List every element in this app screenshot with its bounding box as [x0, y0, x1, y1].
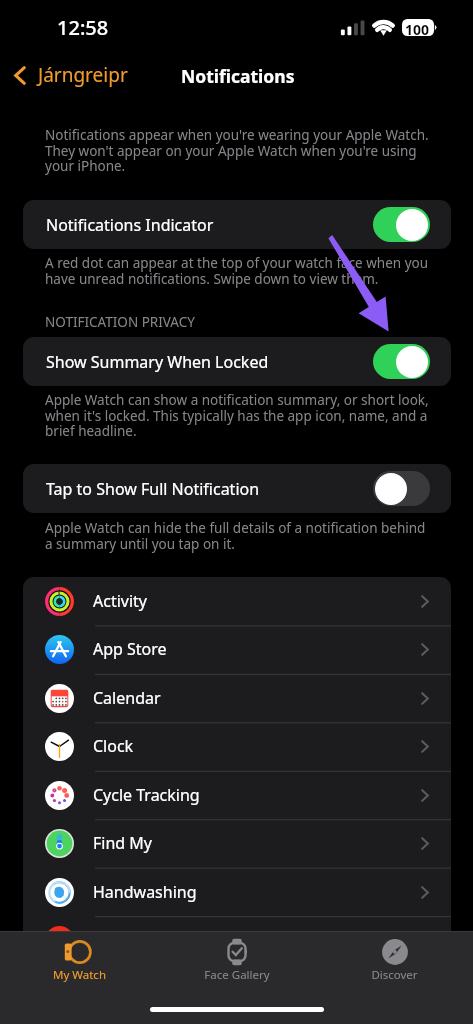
- staticText: Clock: [93, 735, 134, 757]
- button[interactable]: Discover: [316, 932, 473, 1024]
- button[interactable]: Face Gallery: [158, 932, 316, 1024]
- button[interactable]: Heart Rate: [23, 916, 451, 964]
- staticText: A red dot can appear at the top of your …: [45, 254, 435, 287]
- staticText: Cycle Tracking: [93, 784, 200, 806]
- button[interactable]: Tap to Show Full Notification: [373, 471, 430, 506]
- staticText: Heart Rate: [93, 929, 174, 951]
- staticText: Find My: [93, 832, 152, 854]
- staticText: 100: [405, 20, 430, 37]
- button[interactable]: Find My: [23, 819, 451, 867]
- staticText: Handwashing: [93, 881, 197, 903]
- button[interactable]: Notifications Indicator: [23, 200, 451, 249]
- staticText: NOTIFICATION PRIVACY: [45, 313, 195, 331]
- staticText: Notifications: [181, 64, 295, 88]
- button[interactable]: Tap to Show Full Notification: [23, 464, 451, 513]
- button[interactable]: Calendar: [23, 674, 451, 722]
- button[interactable]: Notifications Indicator: [373, 207, 430, 242]
- staticText: Notifications appear when you're wearing…: [45, 126, 435, 174]
- staticText: Járngreipr: [38, 62, 128, 88]
- button[interactable]: App Store: [23, 625, 451, 673]
- button[interactable]: Clock: [23, 722, 451, 770]
- staticText: 12:58: [57, 14, 109, 41]
- button[interactable]: Cycle Tracking: [23, 771, 451, 819]
- staticText: Apple Watch can show a notification summ…: [45, 391, 435, 439]
- button[interactable]: My Watch: [0, 932, 158, 1024]
- staticText: Face Gallery: [204, 967, 270, 983]
- button[interactable]: Handwashing: [23, 868, 451, 916]
- button[interactable]: Járngreipr: [9, 58, 134, 92]
- staticText: My Watch: [53, 967, 106, 983]
- button[interactable]: Show Summary When Locked: [23, 337, 451, 386]
- staticText: Apple Watch can hide the full details of…: [45, 519, 435, 552]
- staticText: App Store: [93, 638, 167, 660]
- staticText: Calendar: [93, 687, 161, 709]
- staticText: Tap to Show Full Notification: [46, 478, 260, 500]
- staticText: Notifications Indicator: [46, 214, 214, 236]
- staticText: Activity: [93, 590, 148, 612]
- button[interactable]: Show Summary When Locked: [373, 344, 430, 379]
- staticText: Discover: [371, 967, 418, 983]
- button[interactable]: Activity: [23, 577, 451, 625]
- staticText: Show Summary When Locked: [46, 351, 269, 373]
